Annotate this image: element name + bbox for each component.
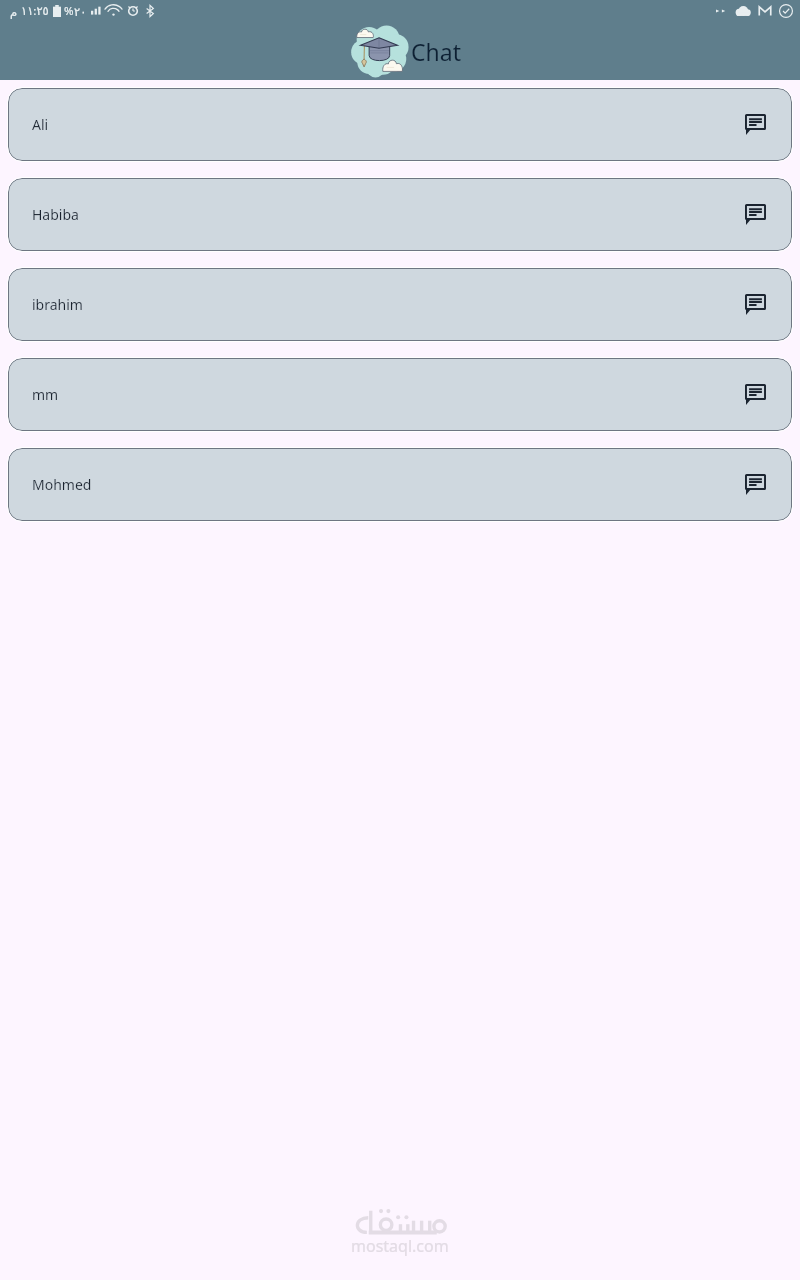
staticText: %: [64, 3, 74, 19]
staticText: Mohmed: [32, 475, 92, 494]
button[interactable]: Ali: [8, 88, 792, 161]
button[interactable]: Open chat with Habiba: [737, 196, 774, 233]
staticText: ١١:٢٥: [21, 3, 49, 19]
staticText: م: [10, 5, 18, 18]
button[interactable]: ibrahim: [8, 268, 792, 341]
staticText: mm: [32, 385, 59, 404]
staticText: Habiba: [32, 205, 79, 224]
staticText: Chat: [411, 36, 461, 67]
button[interactable]: Open chat with mm: [737, 376, 774, 413]
staticText: ibrahim: [32, 295, 83, 314]
button[interactable]: Open chat with Mohmed: [737, 466, 774, 503]
button[interactable]: mm: [8, 358, 792, 431]
button[interactable]: Open chat with ibrahim: [737, 286, 774, 323]
staticText: Ali: [32, 115, 49, 134]
button[interactable]: Mohmed: [8, 448, 792, 521]
button[interactable]: Habiba: [8, 178, 792, 251]
button[interactable]: Open chat with Ali: [737, 106, 774, 143]
staticText: mostaql.com: [351, 1235, 449, 1257]
staticText: ٢٠: [74, 5, 87, 18]
